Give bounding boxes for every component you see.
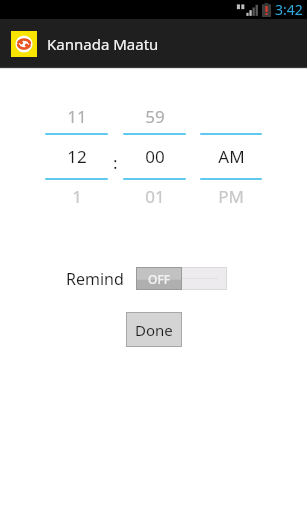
staticText: 3:42 xyxy=(275,0,303,19)
button[interactable]: Hour xyxy=(45,100,108,213)
button[interactable]: Done xyxy=(126,312,182,347)
staticText: OFF xyxy=(148,271,171,287)
button[interactable]: AM PM xyxy=(200,100,262,213)
staticText: 00 xyxy=(145,145,165,168)
staticText: 12 xyxy=(67,145,87,168)
staticText: : xyxy=(113,151,118,174)
staticText: PM xyxy=(218,185,244,208)
button[interactable]: Minute xyxy=(123,100,186,213)
staticText: 11 xyxy=(67,105,87,128)
staticText: AM xyxy=(218,145,245,168)
staticText: 59 xyxy=(145,105,165,128)
staticText: 01 xyxy=(145,185,165,208)
staticText: Remind xyxy=(66,268,124,290)
button[interactable]: Remind toggle, off xyxy=(136,267,227,290)
staticText: Done xyxy=(135,320,173,340)
staticText: 1 xyxy=(72,185,82,208)
other: App icon xyxy=(11,31,37,57)
staticText: Kannada Maatu xyxy=(47,34,159,54)
